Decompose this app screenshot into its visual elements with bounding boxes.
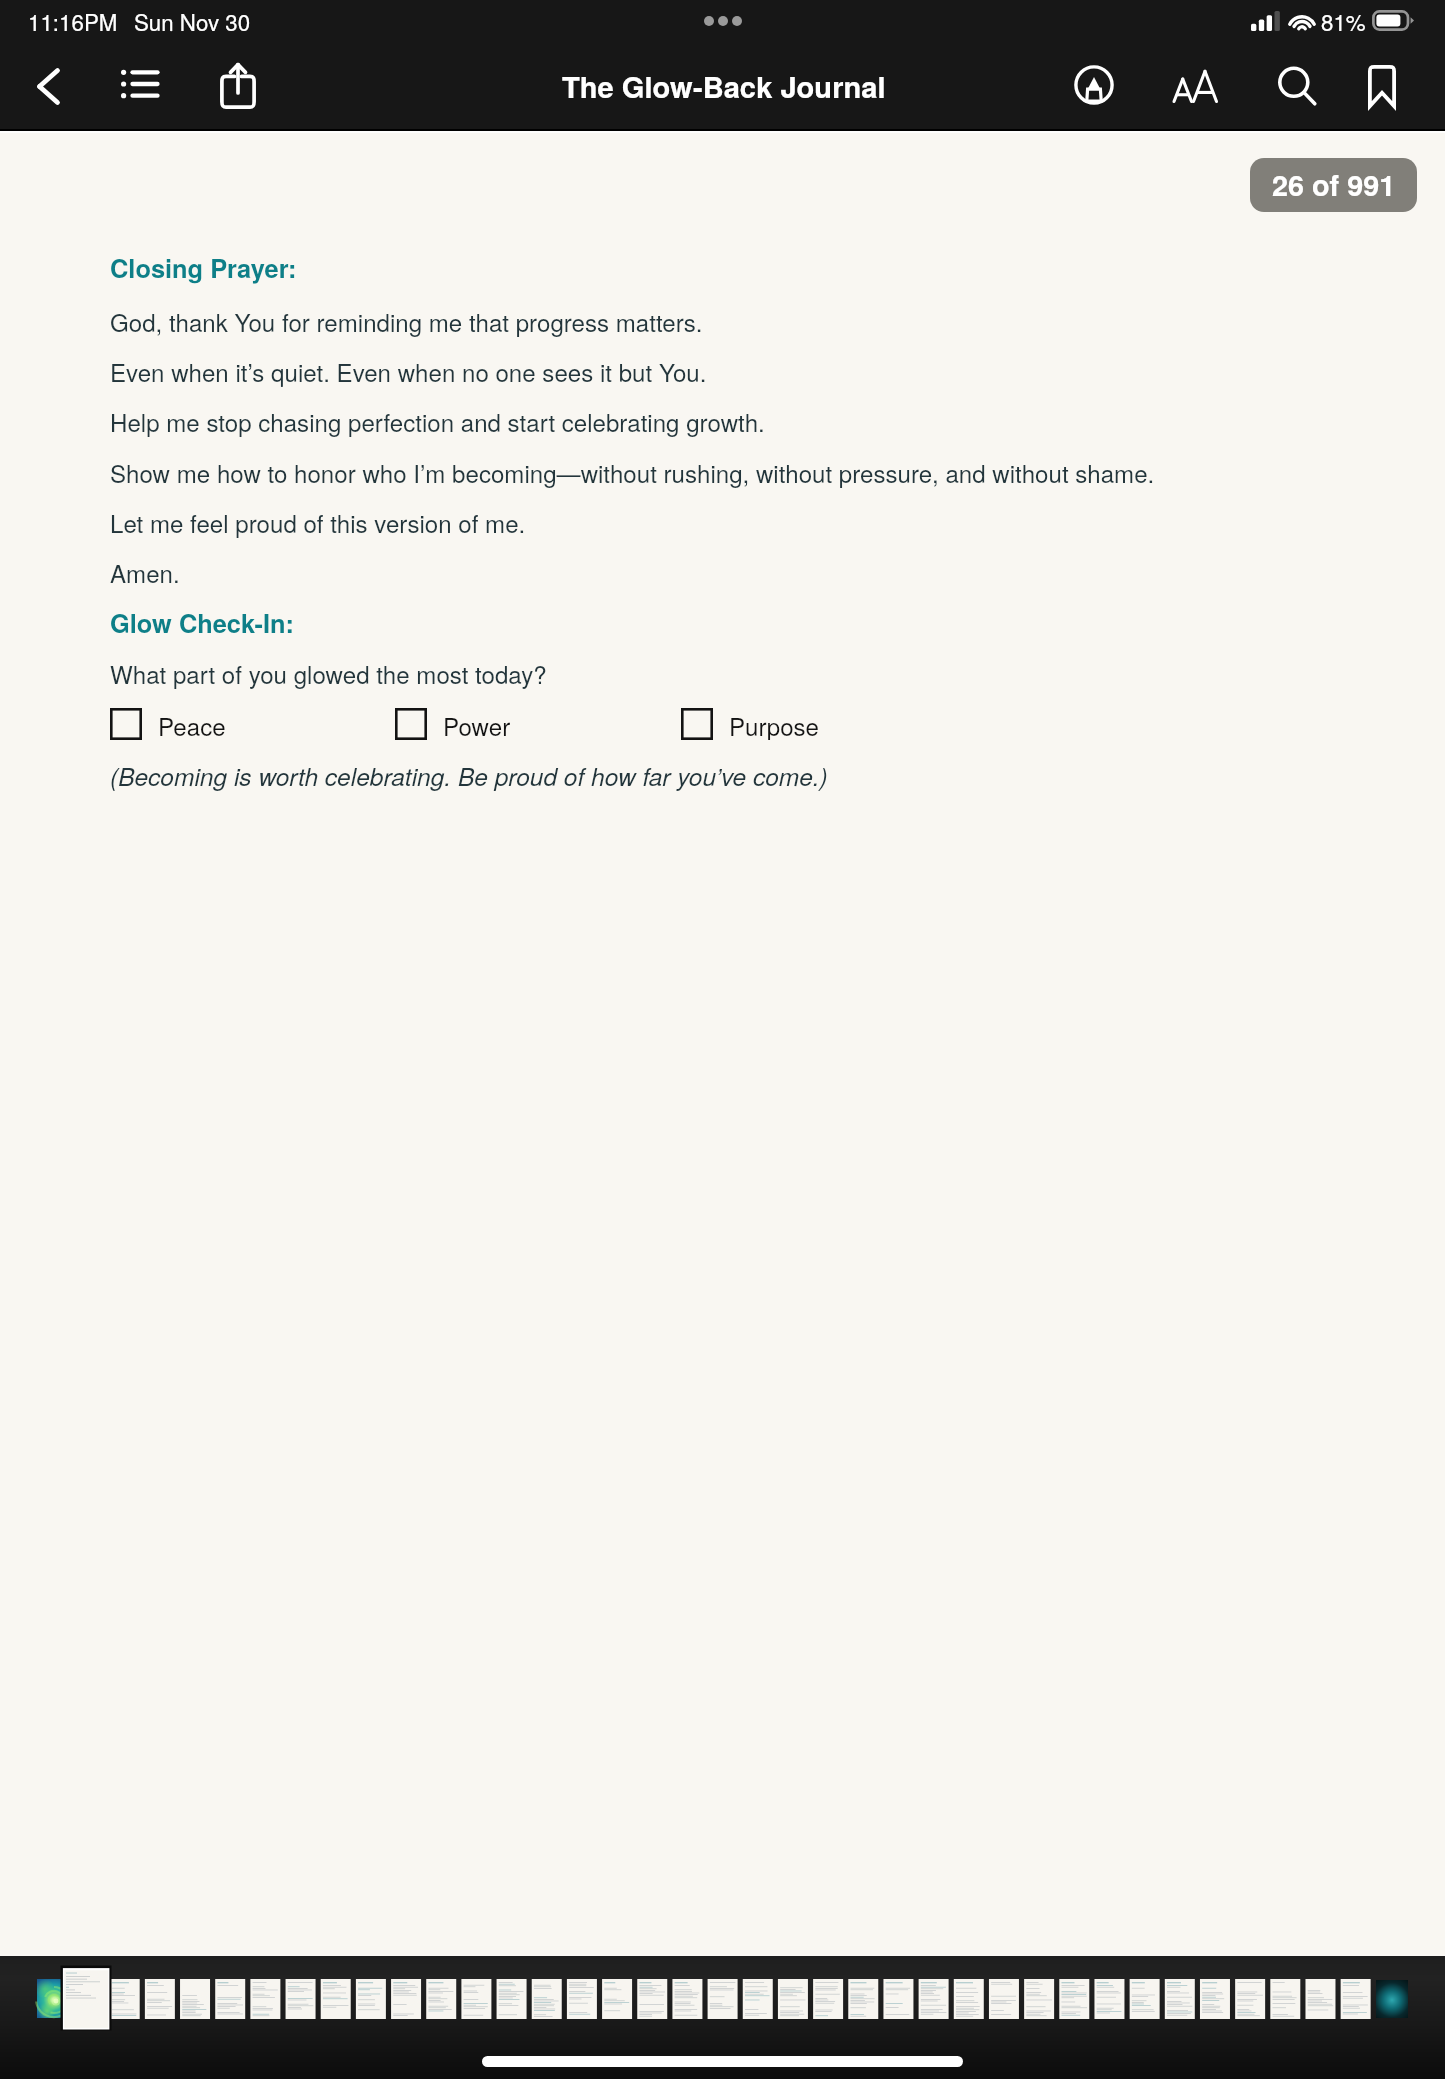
button[interactable]: Table of contents	[99, 43, 181, 125]
button[interactable]: Purpose	[681, 708, 819, 740]
staticText: Sun Nov 30	[134, 5, 251, 37]
button[interactable]: Markup	[1053, 44, 1135, 126]
button[interactable]: Share	[197, 44, 279, 126]
staticText: Let me feel proud of this version of me.	[110, 505, 526, 540]
staticText: PM	[84, 5, 118, 37]
button[interactable]: 26 of 991	[1250, 158, 1417, 212]
staticText: 26 of 991	[1272, 164, 1396, 205]
staticText: Peace	[158, 708, 226, 740]
staticText: Amen.	[110, 555, 180, 590]
staticText: Purpose	[729, 708, 819, 740]
staticText: Show me how to honor who I’m becoming—wi…	[110, 455, 1155, 490]
staticText: Glow Check-In:	[110, 604, 295, 640]
staticText: The Glow-Back Journal	[562, 65, 886, 107]
staticText: 11:16	[28, 5, 84, 37]
staticText: 81%	[1321, 5, 1366, 37]
staticText: (Becoming is worth celebrating. Be proud…	[110, 758, 828, 793]
button[interactable]: Search	[1256, 45, 1338, 127]
staticText: God, thank You for reminding me that pro…	[110, 304, 703, 339]
button[interactable]: Back	[7, 45, 89, 127]
staticText: What part of you glowed the most today?	[110, 656, 547, 691]
staticText: Help me stop chasing perfection and star…	[110, 404, 765, 439]
button[interactable]: Text options	[1154, 46, 1236, 128]
staticText: Power	[443, 708, 511, 740]
staticText: Closing Prayer:	[110, 249, 297, 285]
button[interactable]: Power	[395, 708, 511, 740]
button[interactable]: Bookmark	[1341, 45, 1423, 127]
staticText: Even when it’s quiet. Even when no one s…	[110, 354, 707, 389]
button[interactable]: Peace	[110, 708, 226, 740]
